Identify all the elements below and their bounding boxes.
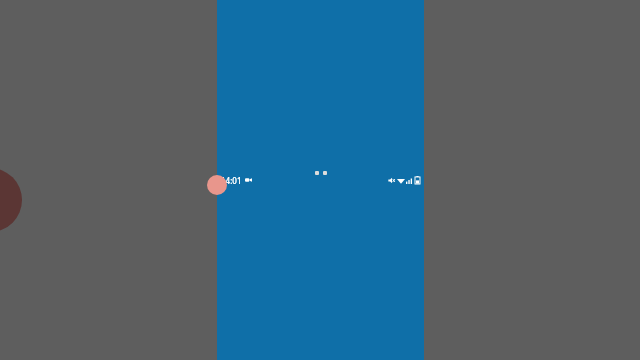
- staticText: 14:01: [221, 175, 242, 186]
- button[interactable]: Loading: [313, 169, 329, 177]
